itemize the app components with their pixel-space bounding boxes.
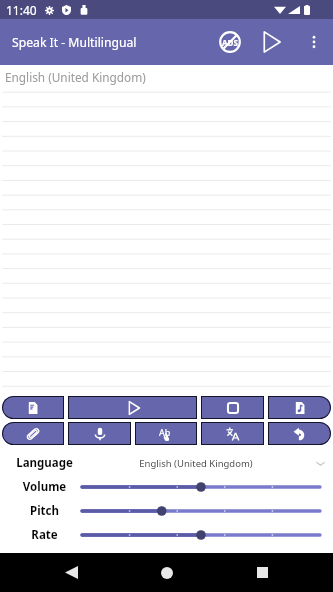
button[interactable]: Recent apps xyxy=(238,553,286,592)
staticText: Language xyxy=(0,455,89,471)
button[interactable]: Stop xyxy=(201,396,264,419)
button[interactable]: Language xyxy=(0,451,333,475)
staticText: English (United Kingdom) xyxy=(5,69,146,85)
button[interactable]: Play xyxy=(252,19,295,65)
button[interactable]: Pitch xyxy=(0,500,333,522)
button[interactable]: More options xyxy=(295,19,333,65)
button[interactable]: Attach xyxy=(2,422,64,445)
button[interactable]: English (United Kingdom) xyxy=(0,65,333,396)
staticText: Ab xyxy=(159,426,171,438)
button[interactable]: Remove ads xyxy=(208,19,252,65)
button[interactable]: New document xyxy=(2,396,64,419)
staticText: Pitch xyxy=(0,503,89,519)
button[interactable]: Home xyxy=(143,553,191,592)
button[interactable]: Rate xyxy=(0,524,333,546)
button[interactable]: Play xyxy=(68,396,197,419)
staticText: Speak It - Multilingual xyxy=(12,34,208,51)
button[interactable]: Volume xyxy=(0,476,333,498)
button[interactable]: Select text xyxy=(135,422,197,445)
button[interactable]: Voice input xyxy=(68,422,131,445)
button[interactable]: Undo xyxy=(268,422,331,445)
staticText: English (United Kingdom) xyxy=(89,457,303,470)
staticText: Rate xyxy=(0,527,89,543)
staticText: 11:40 xyxy=(6,2,37,18)
button[interactable]: Save audio xyxy=(268,396,331,419)
staticText: ADS xyxy=(222,37,238,48)
button[interactable]: Translate xyxy=(201,422,264,445)
button[interactable]: Back xyxy=(47,553,95,592)
staticText: Volume xyxy=(0,479,89,495)
